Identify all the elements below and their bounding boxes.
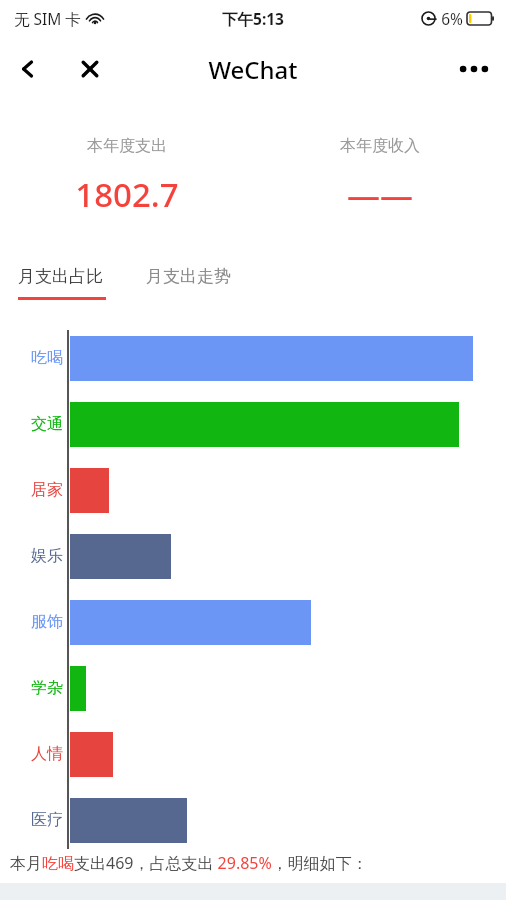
staticText: 本年度支出	[87, 136, 167, 156]
button[interactable]: 本年度收入	[253, 136, 506, 217]
staticText: 本月吃喝支出469，占总支出 29.85%，明细如下：	[10, 852, 368, 874]
button[interactable]: 吃喝	[10, 348, 63, 368]
staticText: WeChat	[208, 53, 298, 86]
staticText: 交通	[31, 414, 63, 434]
button[interactable]: Back	[8, 49, 48, 89]
staticText: 下午5:13	[222, 8, 284, 29]
button[interactable]: 交通	[10, 414, 63, 434]
button[interactable]: 学杂	[10, 678, 63, 698]
staticText: 月支出占比	[18, 266, 103, 287]
staticText: 无 SIM 卡	[14, 8, 81, 29]
button[interactable]: Close	[70, 49, 110, 89]
button[interactable]: 居家	[10, 480, 63, 500]
button[interactable]: 月支出走势	[146, 266, 231, 287]
button[interactable]: 医疗	[10, 810, 63, 830]
staticText: 医疗	[31, 810, 63, 830]
button[interactable]: 人情	[10, 744, 63, 764]
staticText: 6%	[441, 8, 463, 29]
button[interactable]: 服饰	[10, 612, 63, 632]
button[interactable]: More options	[450, 45, 498, 93]
button[interactable]: 月支出占比	[18, 266, 106, 300]
staticText: 吃喝	[31, 348, 63, 368]
staticText: 人情	[31, 744, 63, 764]
staticText: 服饰	[31, 612, 63, 632]
staticText: ——	[347, 172, 413, 217]
staticText: 1802.7	[75, 172, 179, 217]
staticText: 娱乐	[31, 546, 63, 566]
staticText: 居家	[31, 480, 63, 500]
button[interactable]: 娱乐	[10, 546, 63, 566]
staticText: 月支出走势	[146, 266, 231, 287]
staticText: 本年度收入	[340, 136, 420, 156]
staticText: 学杂	[31, 678, 63, 698]
button[interactable]: 本年度支出	[0, 136, 253, 217]
